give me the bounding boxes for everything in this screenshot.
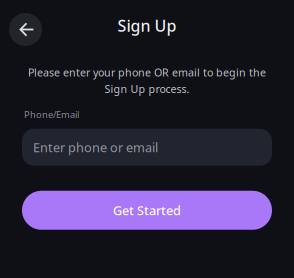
button[interactable]: Get Started: [22, 191, 272, 230]
button[interactable]: Enter phone or email: [22, 129, 272, 166]
staticText: Sign Up process.: [104, 81, 189, 96]
staticText: Please enter your phone OR email to begi…: [28, 65, 266, 79]
button[interactable]: Back: [9, 13, 42, 46]
staticText: Sign Up: [117, 15, 176, 36]
staticText: Phone/Email: [24, 108, 79, 121]
staticText: Enter phone or email: [33, 139, 158, 156]
staticText: Get Started: [113, 202, 181, 219]
